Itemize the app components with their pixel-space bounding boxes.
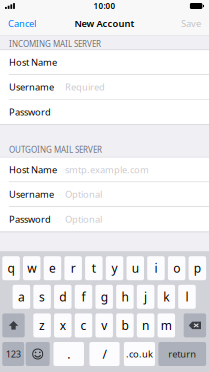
staticText: d bbox=[59, 289, 66, 305]
button[interactable]: y bbox=[106, 256, 123, 280]
button[interactable]: q bbox=[2, 256, 20, 280]
button[interactable]: a bbox=[13, 285, 30, 309]
staticText: Required bbox=[65, 81, 105, 93]
staticText: 10:00 bbox=[93, 1, 115, 11]
staticText: r bbox=[71, 260, 76, 276]
staticText: l bbox=[185, 289, 188, 305]
staticText: h bbox=[121, 289, 128, 305]
button[interactable]: b bbox=[116, 313, 134, 337]
staticText: Username bbox=[9, 188, 54, 200]
button[interactable]: / bbox=[89, 342, 120, 366]
button[interactable]: Username bbox=[0, 182, 209, 207]
button[interactable]: g bbox=[95, 285, 113, 309]
staticText: a bbox=[18, 289, 25, 305]
staticText: b bbox=[121, 317, 128, 333]
button[interactable]: Shift bbox=[2, 313, 25, 337]
button[interactable]: Host Name bbox=[0, 50, 209, 75]
button[interactable]: Password bbox=[0, 207, 209, 232]
button[interactable]: c bbox=[75, 313, 92, 337]
staticText: w bbox=[27, 260, 36, 276]
button[interactable]: u bbox=[126, 256, 144, 280]
button[interactable]: s bbox=[33, 285, 51, 309]
staticText: INCOMING MAIL SERVER bbox=[9, 38, 101, 49]
staticText: y bbox=[111, 260, 117, 276]
button[interactable]: Host Name bbox=[0, 157, 209, 182]
staticText: n bbox=[142, 317, 149, 333]
staticText: .co.uk bbox=[126, 348, 153, 360]
button[interactable]: m bbox=[157, 313, 175, 337]
button[interactable]: z bbox=[33, 313, 51, 337]
button[interactable]: v bbox=[95, 313, 113, 337]
staticText: z bbox=[39, 317, 45, 333]
button[interactable]: r bbox=[64, 256, 82, 280]
staticText: Cancel bbox=[8, 17, 36, 30]
button[interactable]: Username bbox=[0, 75, 209, 100]
button[interactable]: Password bbox=[0, 100, 209, 124]
button[interactable]: x bbox=[54, 313, 71, 337]
staticText: p bbox=[194, 260, 201, 276]
staticText: e bbox=[49, 260, 56, 276]
staticText: o bbox=[173, 260, 180, 276]
button[interactable]: f bbox=[75, 285, 92, 309]
staticText: f bbox=[81, 289, 85, 305]
button[interactable]: Emoji bbox=[26, 342, 50, 366]
staticText: m bbox=[161, 317, 172, 333]
staticText: Password bbox=[9, 213, 51, 225]
staticText: c bbox=[80, 317, 86, 333]
button[interactable]: j bbox=[137, 285, 154, 309]
staticText: . bbox=[67, 346, 70, 362]
button[interactable]: n bbox=[137, 313, 154, 337]
button[interactable]: l bbox=[178, 285, 196, 309]
button[interactable]: 123 bbox=[2, 342, 24, 366]
staticText: u bbox=[132, 260, 139, 276]
staticText: j bbox=[144, 289, 147, 305]
staticText: g bbox=[101, 289, 108, 305]
button[interactable]: p bbox=[189, 256, 206, 280]
button[interactable]: Save bbox=[175, 12, 209, 35]
button[interactable]: h bbox=[116, 285, 134, 309]
button[interactable]: d bbox=[54, 285, 72, 309]
staticText: q bbox=[7, 260, 14, 276]
staticText: s bbox=[39, 289, 45, 305]
staticText: Optional bbox=[65, 188, 102, 200]
staticText: 123 bbox=[6, 348, 21, 360]
staticText: Optional bbox=[65, 213, 102, 225]
button[interactable]: e bbox=[44, 256, 61, 280]
staticText: Password bbox=[9, 106, 51, 118]
button[interactable]: t bbox=[85, 256, 103, 280]
button[interactable]: o bbox=[168, 256, 185, 280]
staticText: smtp.example.com bbox=[65, 163, 149, 176]
staticText: return bbox=[168, 348, 196, 360]
staticText: Save bbox=[181, 17, 201, 30]
staticText: New Account bbox=[74, 17, 134, 30]
button[interactable]: .co.uk bbox=[124, 342, 155, 366]
staticText: x bbox=[60, 317, 66, 333]
staticText: k bbox=[163, 289, 169, 305]
button[interactable]: Cancel bbox=[0, 12, 42, 35]
staticText: t bbox=[92, 260, 96, 276]
button[interactable]: k bbox=[158, 285, 175, 309]
staticText: Host Name bbox=[9, 56, 57, 68]
button[interactable]: w bbox=[23, 256, 40, 280]
staticText: Username bbox=[9, 81, 54, 93]
button[interactable]: . bbox=[53, 342, 84, 366]
staticText: i bbox=[154, 260, 157, 276]
staticText: OUTGOING MAIL SERVER bbox=[9, 144, 102, 155]
button[interactable]: i bbox=[147, 256, 165, 280]
button[interactable]: return bbox=[158, 342, 206, 366]
button[interactable]: Delete bbox=[184, 313, 206, 337]
staticText: v bbox=[101, 317, 107, 333]
staticText: / bbox=[102, 346, 106, 362]
staticText: Host Name bbox=[9, 163, 57, 176]
